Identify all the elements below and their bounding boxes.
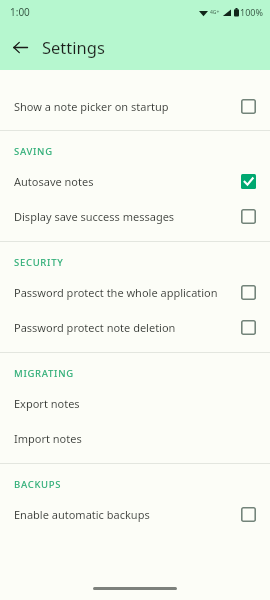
staticText: MIGRATING (14, 367, 74, 380)
staticText: Autosave notes (14, 174, 241, 189)
button[interactable]: Enable automatic backups (0, 498, 270, 531)
button[interactable]: Password protect the whole application (0, 276, 270, 309)
button[interactable]: Password protect note deletion (0, 309, 270, 345)
button[interactable]: Display save success messages (0, 198, 270, 234)
staticText: 4G+ (210, 9, 220, 16)
staticText: Show a note picker on startup (14, 99, 241, 114)
button[interactable]: Show a note picker on startup (0, 84, 270, 128)
staticText: Export notes (14, 396, 256, 411)
staticText: 1:00 (10, 5, 30, 19)
staticText: Password protect note deletion (14, 320, 241, 335)
staticText: Password protect the whole application (14, 285, 241, 300)
button[interactable]: Import notes (0, 420, 270, 456)
staticText: Settings (42, 36, 105, 58)
staticText: SAVING (14, 145, 53, 158)
button[interactable]: Back (4, 31, 36, 63)
staticText: Import notes (14, 431, 256, 446)
staticText: BACKUPS (14, 478, 62, 491)
staticText: Display save success messages (14, 209, 241, 224)
button[interactable]: Autosave notes (0, 165, 270, 198)
button[interactable]: Export notes (0, 387, 270, 420)
staticText: SECURITY (14, 256, 64, 269)
staticText: Enable automatic backups (14, 507, 241, 522)
staticText: 100% (240, 6, 263, 18)
